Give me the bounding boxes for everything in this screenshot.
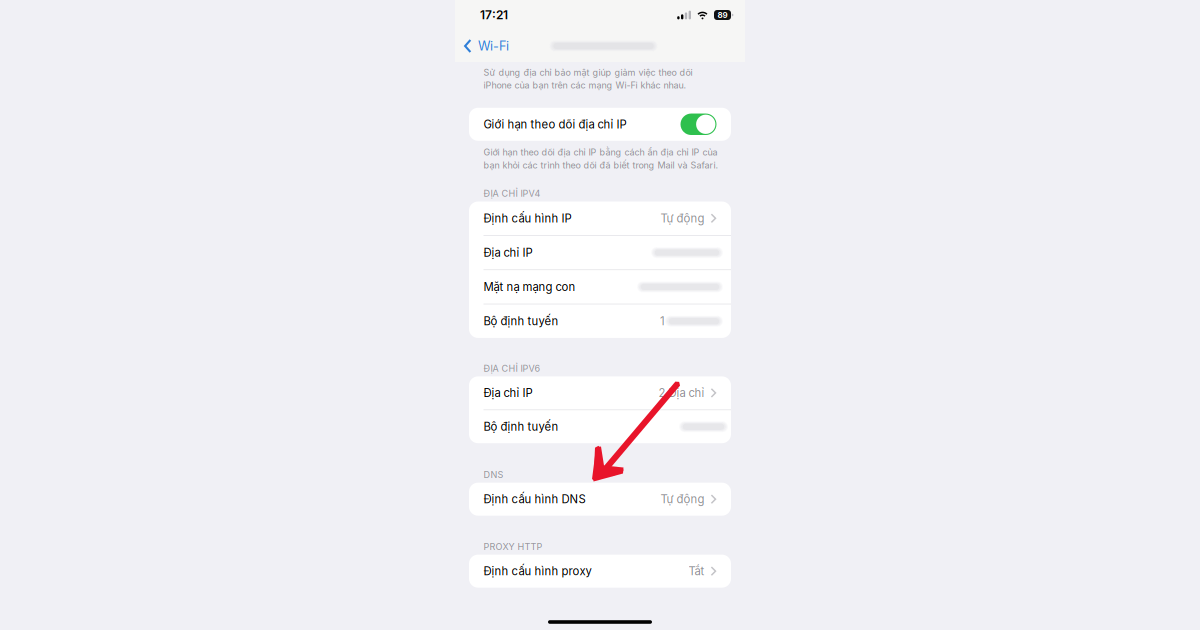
staticText: 1: [660, 314, 665, 328]
staticText: iPhone của bạn trên các mạng Wi-Fi khác …: [483, 80, 686, 91]
staticText: PROXY HTTP: [483, 541, 542, 552]
staticText: Mặt nạ mạng con: [483, 280, 575, 294]
staticText: Định cấu hình proxy: [483, 564, 591, 578]
button[interactable]: Định cấu hình IP: [469, 201, 731, 235]
staticText: Định cấu hình DNS: [483, 492, 585, 506]
button[interactable]: Giới hạn theo dõi địa chỉ IP: [469, 108, 731, 141]
button[interactable]: Bộ định tuyến: [469, 304, 731, 338]
staticText: ĐỊA CHỈ IPV6: [483, 363, 540, 374]
staticText: Định cấu hình IP: [483, 211, 571, 225]
staticText: 2 Địa chỉ: [658, 386, 704, 400]
staticText: Tắt: [688, 564, 704, 578]
staticText: 17:21: [480, 8, 508, 22]
staticText: Wi-Fi: [478, 38, 509, 54]
staticText: Giới hạn theo dõi địa chỉ IP: [483, 117, 626, 131]
staticText: Bộ định tuyến: [483, 314, 558, 328]
button[interactable]: Địa chỉ IP: [469, 376, 731, 409]
staticText: Sử dụng địa chỉ bảo mật giúp giảm việc t…: [483, 67, 692, 78]
button[interactable]: Bộ định tuyến: [469, 410, 731, 443]
button[interactable]: Định cấu hình proxy: [469, 555, 731, 588]
staticText: 89: [717, 10, 727, 20]
staticText: Địa chỉ IP: [483, 386, 532, 400]
button[interactable]: Mặt nạ mạng con: [469, 270, 731, 304]
staticText: Địa chỉ IP: [483, 246, 532, 259]
button[interactable]: Định cấu hình DNS: [469, 483, 731, 516]
staticText: Tự động: [660, 211, 704, 225]
staticText: ĐỊA CHỈ IPV4: [483, 188, 540, 199]
button[interactable]: Wi-Fi: [464, 38, 513, 54]
staticText: Bộ định tuyến: [483, 420, 558, 433]
staticText: DNS: [483, 469, 503, 480]
staticText: bạn khỏi các trình theo dõi đã biết tron…: [483, 160, 718, 171]
staticText: Tự động: [660, 492, 704, 506]
button[interactable]: Địa chỉ IP: [469, 236, 731, 269]
staticText: Giới hạn theo dõi địa chỉ IP bằng cách ẩ…: [483, 147, 717, 158]
